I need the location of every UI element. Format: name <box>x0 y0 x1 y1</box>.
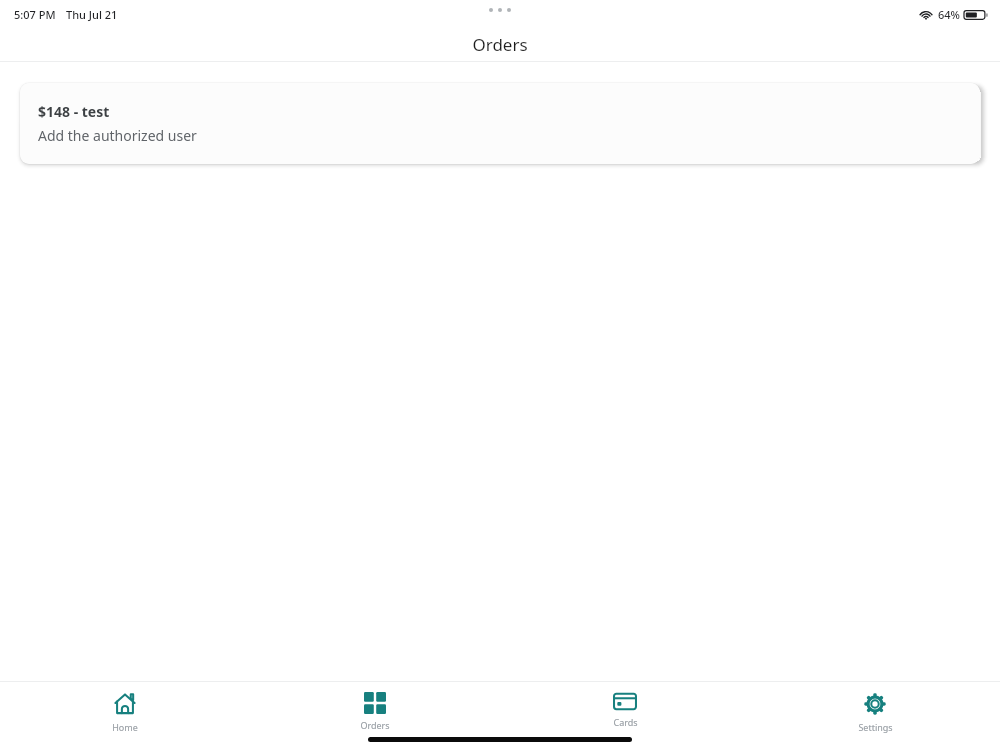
staticText: Settings <box>858 721 893 733</box>
button[interactable]: Cards <box>500 682 750 728</box>
button[interactable]: Settings <box>750 682 1000 733</box>
button[interactable]: $148 - test <box>20 83 980 164</box>
staticText: Orders <box>472 33 528 56</box>
staticText: Orders <box>360 719 390 731</box>
button[interactable]: Orders <box>250 682 500 731</box>
button[interactable]: Home <box>0 682 250 733</box>
staticText: Add the authorized user <box>38 126 197 145</box>
staticText: 5:07 PM <box>14 7 56 22</box>
staticText: Thu Jul 21 <box>66 7 118 22</box>
staticText: Home <box>112 721 138 733</box>
staticText: $148 - test <box>38 102 110 121</box>
staticText: 64% <box>938 7 960 22</box>
staticText: Cards <box>613 716 638 728</box>
